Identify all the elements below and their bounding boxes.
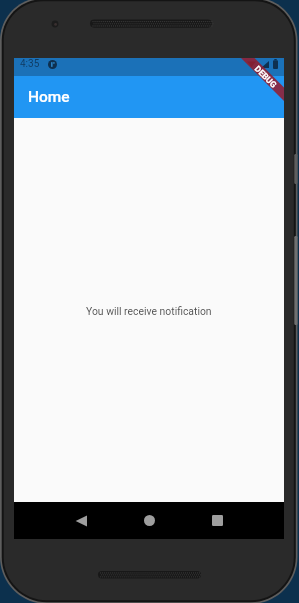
staticText: 4:35 [20, 58, 40, 70]
staticText: You will receive notification [86, 305, 212, 317]
staticText: DEBUG [253, 64, 279, 90]
button[interactable]: Back [61, 502, 101, 539]
button[interactable]: Recents [197, 502, 237, 539]
staticText: Home [28, 88, 70, 106]
button[interactable]: Home [129, 502, 169, 539]
